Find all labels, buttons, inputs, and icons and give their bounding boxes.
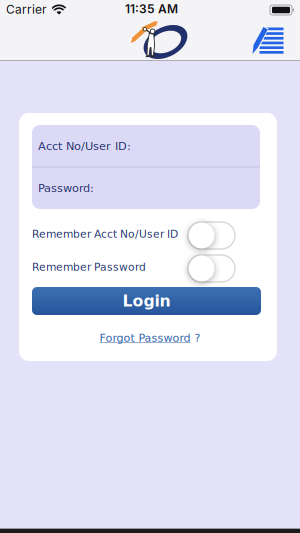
button[interactable]: Login <box>32 287 261 315</box>
staticText: Carrier <box>6 2 47 17</box>
staticText: 11:35 AM <box>125 2 178 16</box>
staticText: Login <box>122 292 170 310</box>
staticText: Remember Password <box>32 261 146 273</box>
staticText: Password: <box>38 181 94 195</box>
button[interactable]: Password: <box>38 167 254 209</box>
staticText: Remember Acct No/User ID <box>32 228 178 240</box>
button[interactable]: Acct No/User ID: <box>38 125 254 167</box>
button[interactable]: Menu <box>251 23 291 57</box>
button[interactable]: Forgot Password <box>99 332 200 344</box>
button[interactable]: Remember Acct No/User ID <box>188 222 235 249</box>
staticText: Acct No/User ID: <box>38 139 131 153</box>
staticText: ? <box>194 332 200 344</box>
staticText: Forgot Password <box>99 332 190 344</box>
button[interactable]: Remember Password <box>188 255 235 282</box>
